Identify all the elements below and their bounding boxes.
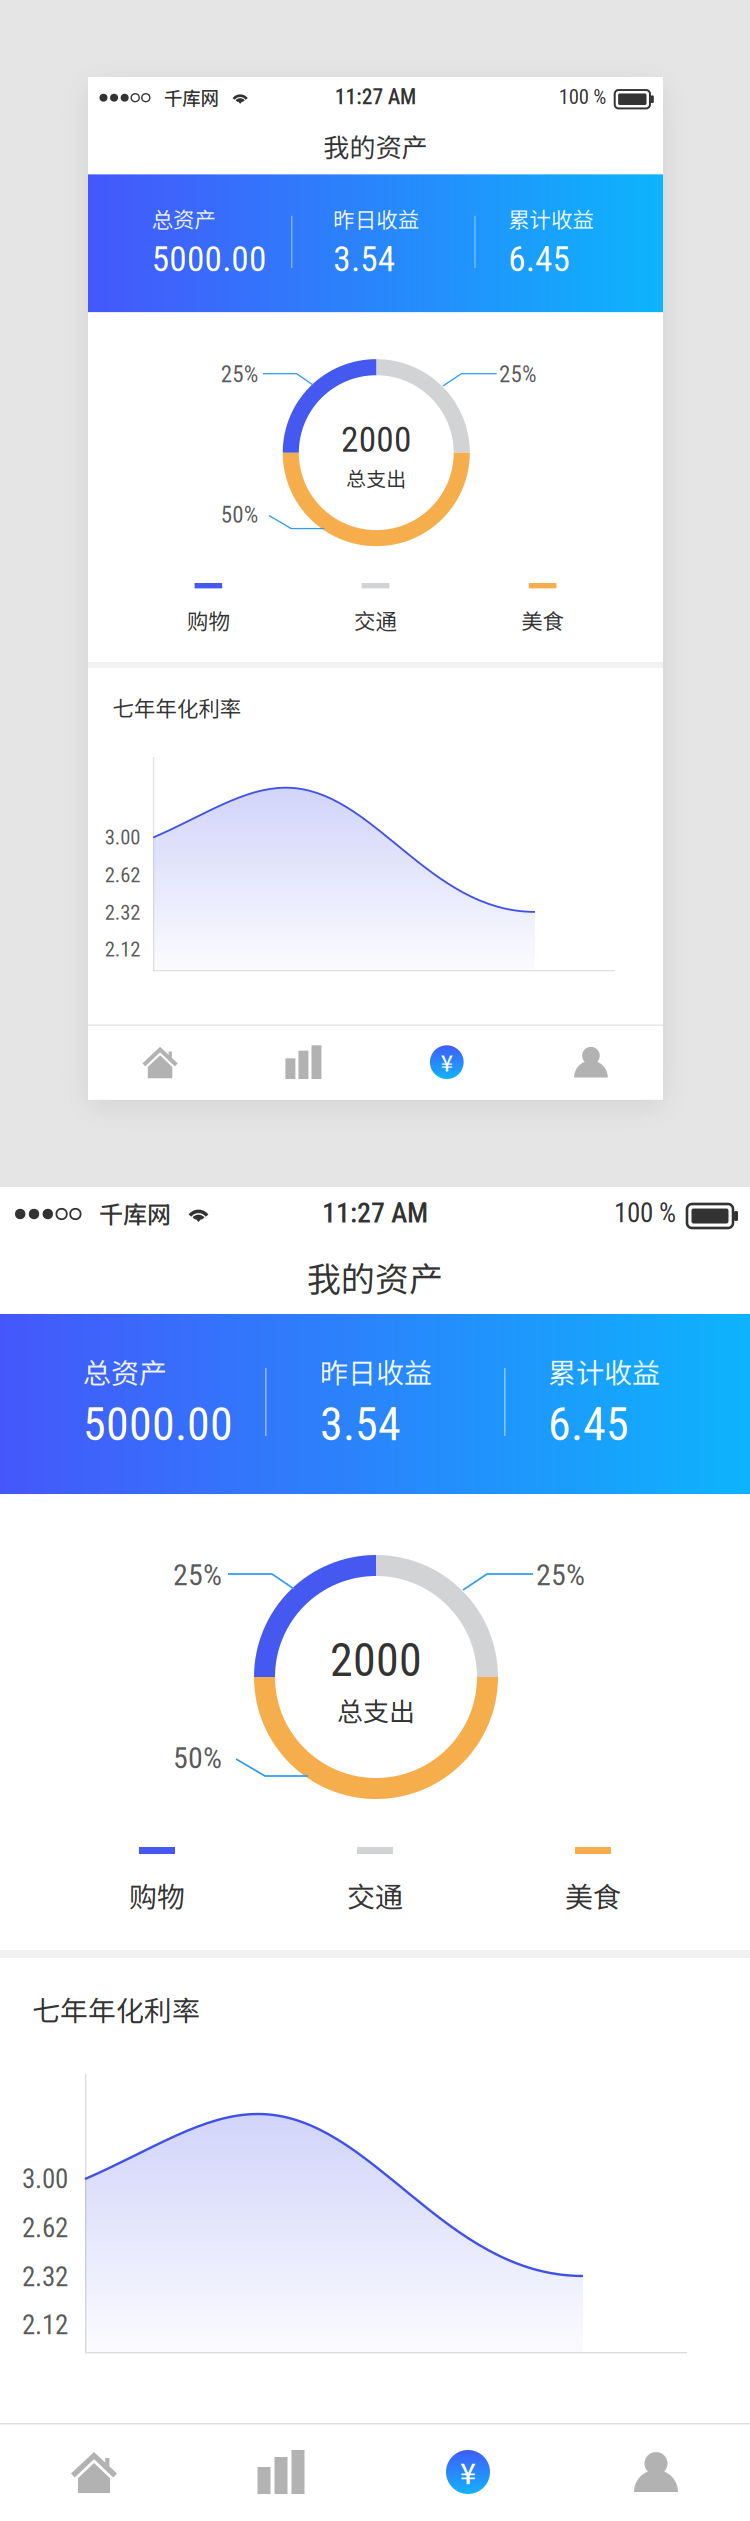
staticText: 我的资产 [307, 1252, 443, 1302]
staticText: 交通 [347, 1875, 403, 1915]
staticText: 50% [261, 630, 310, 666]
staticText: 3.54 [320, 1397, 401, 1451]
staticText: 11:27 AM [322, 1197, 428, 1229]
button[interactable]: 行情 [88, 1313, 274, 1411]
button[interactable]: 我的 [88, 1313, 276, 1411]
staticText: 美食 [565, 1875, 621, 1915]
staticText: 6.45 [636, 287, 717, 341]
staticText: 累计收益 [636, 241, 748, 281]
button[interactable]: 资产 [0, 2423, 188, 2521]
staticText: 七年年化利率 [120, 879, 288, 919]
staticText: 3.00 [110, 1053, 156, 1085]
staticText: ¥ [548, 1342, 564, 1382]
staticText: 昨日收益 [408, 241, 520, 281]
button[interactable]: 行情 [0, 2423, 186, 2521]
staticText: 25% [261, 447, 310, 483]
staticText: 总资产 [171, 241, 255, 281]
staticText: 2.12 [110, 1199, 156, 1231]
staticText: 5000.00 [171, 287, 321, 341]
staticText: 25% [173, 1557, 222, 1593]
staticText: 2000 [418, 523, 510, 577]
staticText: 6.45 [548, 1397, 629, 1451]
staticText: 3.54 [408, 287, 489, 341]
staticText: 千库网 [187, 86, 259, 120]
button[interactable]: 首页 [0, 2423, 188, 2521]
staticText: 总资产 [83, 1351, 167, 1391]
button[interactable]: 我的 [0, 2423, 188, 2521]
staticText: 50% [173, 1740, 222, 1776]
staticText: 千库网 [99, 1196, 171, 1230]
staticText: 2.32 [22, 2261, 68, 2293]
staticText: 2.12 [22, 2309, 68, 2341]
staticText: 2.62 [110, 1102, 156, 1134]
staticText: 25% [536, 1557, 585, 1593]
staticText: 昨日收益 [320, 1351, 432, 1391]
staticText: 25% [624, 447, 673, 483]
staticText: 购物 [217, 765, 273, 805]
staticText: 11:27 AM [410, 87, 516, 119]
staticText: 美食 [653, 765, 709, 805]
staticText: 5000.00 [83, 1397, 233, 1451]
staticText: 100 % [614, 1197, 676, 1229]
staticText: 七年年化利率 [32, 1989, 200, 2029]
staticText: ¥ [460, 2452, 476, 2492]
button[interactable]: 首页 [88, 1313, 276, 1411]
staticText: 2000 [330, 1633, 422, 1687]
button[interactable]: 资产 [88, 1313, 276, 1411]
staticText: 购物 [129, 1875, 185, 1915]
staticText: 我的资产 [395, 142, 531, 192]
staticText: 累计收益 [548, 1351, 660, 1391]
staticText: 2.62 [22, 2212, 68, 2244]
staticText: 总支出 [337, 1691, 415, 1729]
staticText: 3.00 [22, 2163, 68, 2195]
